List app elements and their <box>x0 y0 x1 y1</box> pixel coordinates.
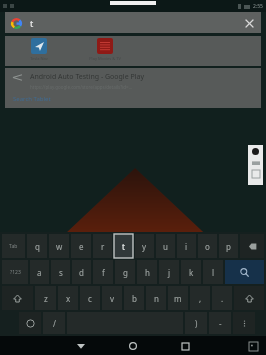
staticText: u <box>163 241 168 252</box>
staticText: . <box>221 293 224 304</box>
button[interactable]: Home <box>124 337 142 355</box>
button[interactable]: Emoji <box>19 312 41 334</box>
staticText: ) <box>195 318 198 329</box>
staticText: i <box>185 241 188 252</box>
button[interactable]: ?123 <box>2 260 28 284</box>
staticText: g <box>123 267 128 278</box>
button[interactable]: o <box>198 234 217 258</box>
button[interactable]: e <box>71 234 91 258</box>
button[interactable]: Tesla Nav <box>19 38 59 61</box>
button[interactable]: More options <box>233 312 255 334</box>
staticText: Play Movies & TV <box>89 56 121 61</box>
button[interactable]: ) <box>185 312 207 334</box>
staticText: c <box>88 293 92 304</box>
staticText: 2:55 <box>253 3 263 10</box>
button[interactable]: i <box>177 234 196 258</box>
button[interactable]: Android Auto Testing - Google Play <box>5 68 261 108</box>
button[interactable]: f <box>93 260 113 284</box>
button[interactable]: a <box>30 260 49 284</box>
button[interactable]: l <box>203 260 223 284</box>
button[interactable]: x <box>58 286 78 310</box>
button[interactable]: Shift <box>234 286 264 310</box>
staticText: Tab <box>9 243 18 250</box>
button[interactable]: Play Movies & TV <box>85 38 125 61</box>
button[interactable]: Screen recorder controls <box>248 145 263 185</box>
button[interactable]: Search <box>225 260 264 284</box>
button[interactable]: r <box>93 234 112 258</box>
button[interactable]: n <box>146 286 166 310</box>
button[interactable]: c <box>80 286 100 310</box>
button[interactable]: w <box>49 234 69 258</box>
staticText: ?123 <box>10 269 21 276</box>
staticText: e <box>79 241 84 252</box>
button[interactable]: u <box>156 234 175 258</box>
button[interactable]: q <box>27 234 47 258</box>
staticText: q <box>35 241 40 252</box>
button[interactable]: , <box>190 286 210 310</box>
button[interactable]: Clear query <box>243 17 255 29</box>
button[interactable]: j <box>159 260 179 284</box>
button[interactable]: z <box>35 286 56 310</box>
staticText: , <box>199 293 202 304</box>
staticText: p <box>226 241 231 252</box>
button[interactable]: Switch keyboard <box>246 339 260 353</box>
button[interactable]: h <box>137 260 157 284</box>
button[interactable]: . <box>212 286 232 310</box>
staticText: l <box>212 267 215 278</box>
button[interactable]: Tab <box>2 234 25 258</box>
button[interactable]: Shift <box>2 286 33 310</box>
button[interactable]: s <box>51 260 70 284</box>
staticText: o <box>205 241 210 252</box>
staticText: / <box>53 318 56 329</box>
button[interactable]: m <box>168 286 188 310</box>
staticText: t <box>30 17 34 29</box>
staticText: - <box>219 318 222 329</box>
staticText: a <box>37 267 42 278</box>
staticText: x <box>66 293 71 304</box>
button[interactable]: p <box>219 234 238 258</box>
staticText: https://play.google.com/store/apps/detai… <box>30 84 133 90</box>
staticText: d <box>79 267 84 278</box>
button[interactable]: b <box>124 286 144 310</box>
button[interactable]: Back <box>72 337 90 355</box>
button[interactable]: y <box>135 234 154 258</box>
button[interactable]: - <box>209 312 231 334</box>
button[interactable]: t <box>5 12 261 33</box>
button[interactable]: v <box>102 286 122 310</box>
staticText: t <box>122 241 125 252</box>
staticText: z <box>44 293 48 304</box>
button[interactable]: Recents <box>176 337 194 355</box>
staticText: s <box>59 267 63 278</box>
staticText: n <box>154 293 159 304</box>
staticText: Tesla Nav <box>30 56 48 61</box>
staticText: r <box>101 241 105 252</box>
staticText: f <box>102 267 105 278</box>
staticText: b <box>132 293 137 304</box>
button[interactable]: t <box>114 234 133 258</box>
button[interactable]: g <box>115 260 135 284</box>
staticText: j <box>168 267 171 278</box>
button[interactable]: / <box>43 312 65 334</box>
staticText: Android Auto Testing - Google Play <box>30 72 144 82</box>
staticText: v <box>110 293 115 304</box>
staticText: h <box>145 267 150 278</box>
button[interactable]: Search Tablet <box>13 95 51 103</box>
staticText: y <box>142 241 147 252</box>
staticText: k <box>189 267 194 278</box>
button[interactable]: Backspace <box>240 234 264 258</box>
staticText: m <box>174 293 182 304</box>
button[interactable]: k <box>181 260 201 284</box>
staticText: w <box>56 241 63 252</box>
button[interactable]: d <box>72 260 91 284</box>
